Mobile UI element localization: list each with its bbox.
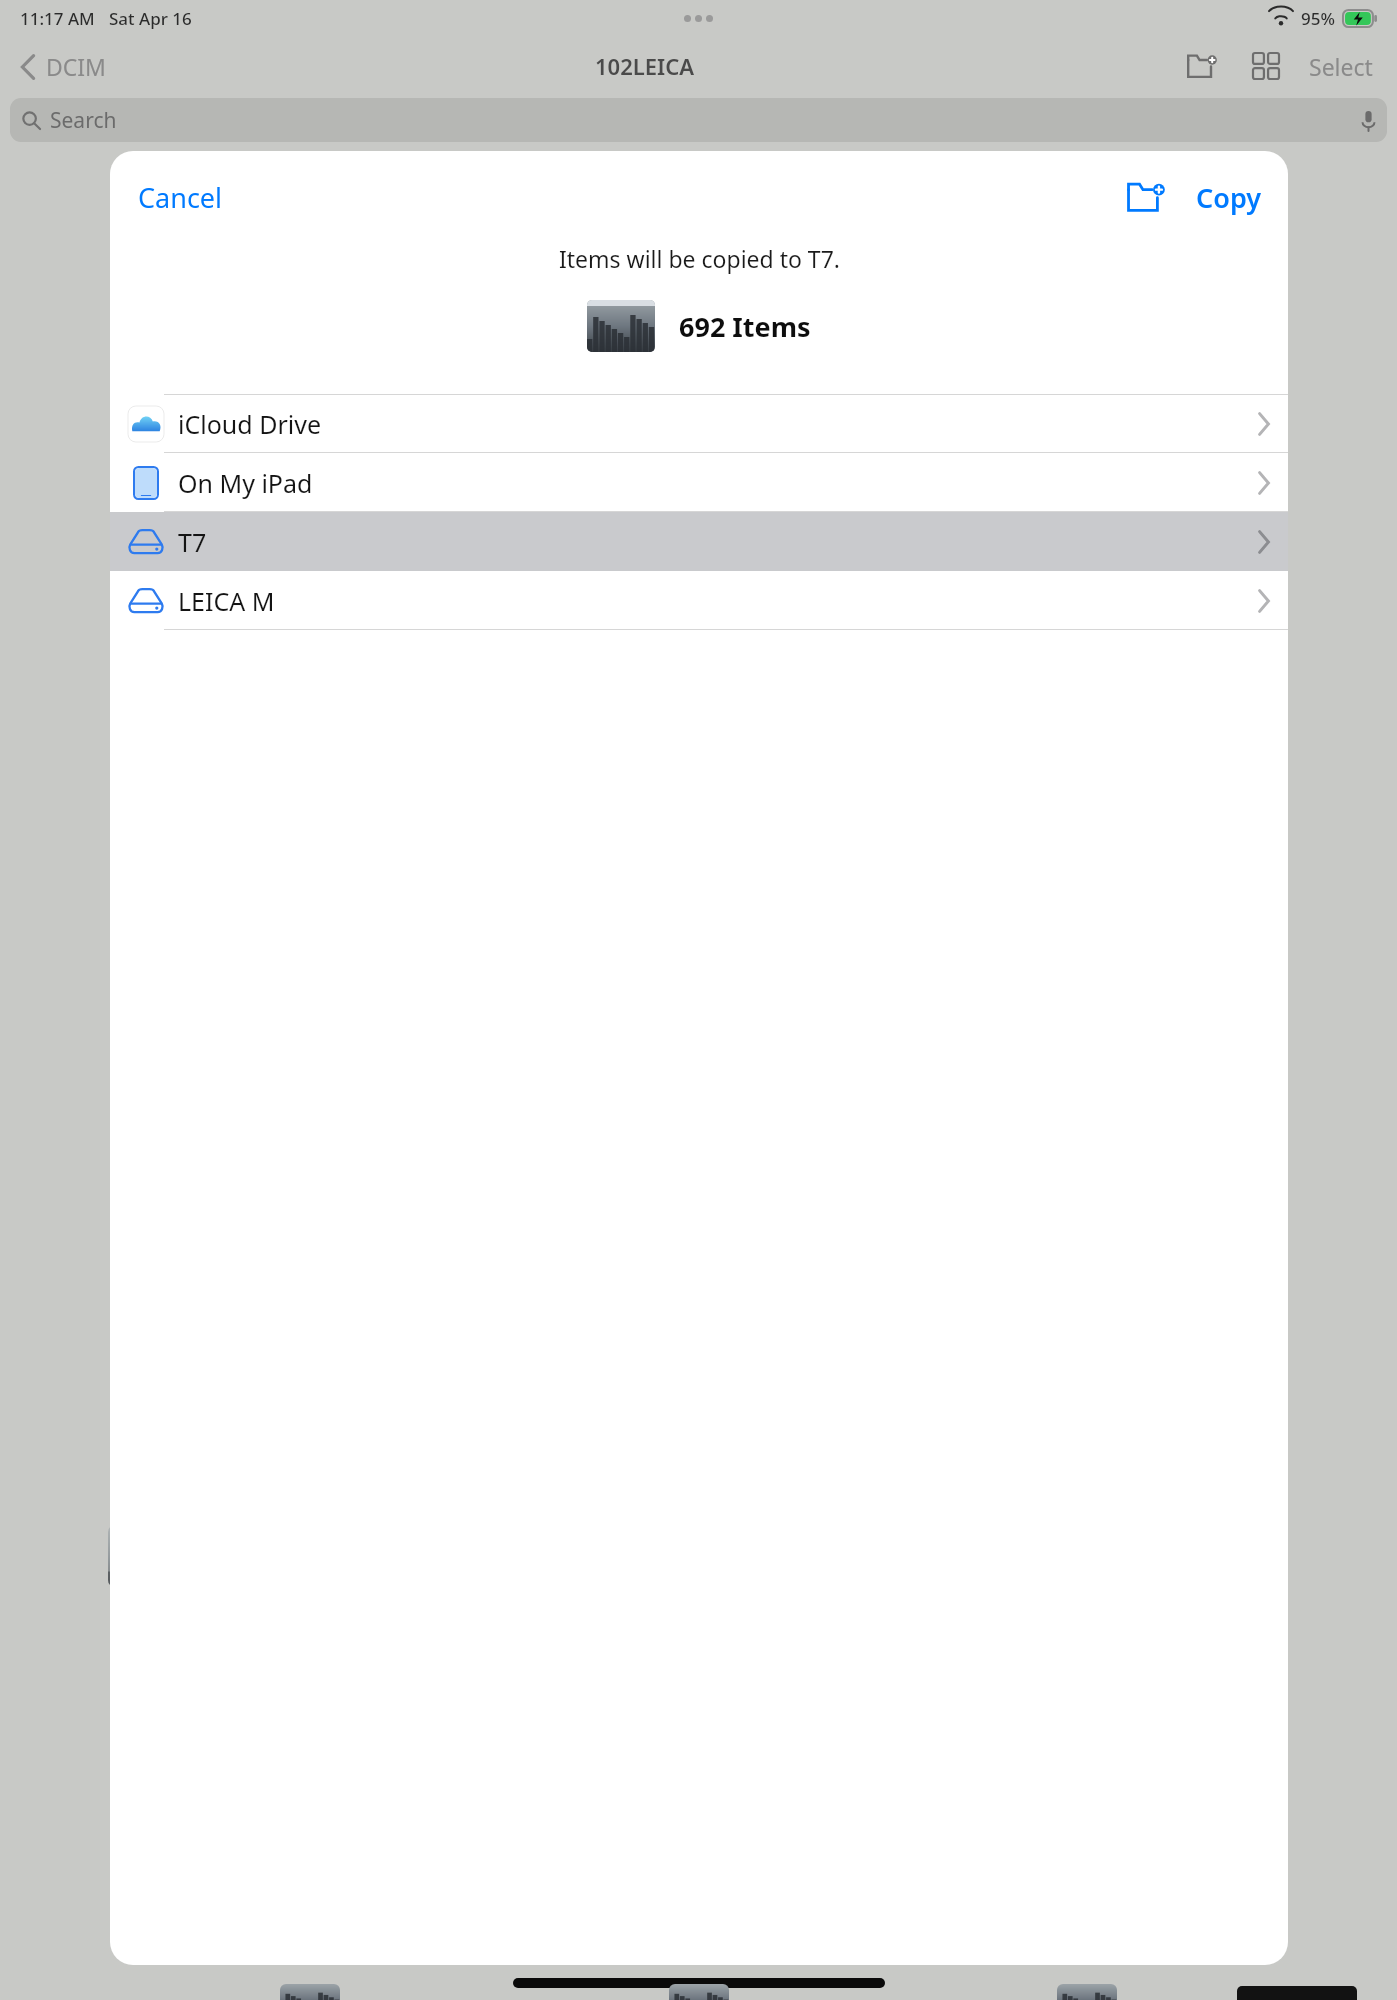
button[interactable]: LEICA M [110,571,1288,630]
button[interactable]: New Folder [1116,167,1176,227]
staticText: 692 Items [679,308,811,345]
button[interactable]: Copy [1184,171,1274,224]
button[interactable]: New Folder [1179,43,1225,89]
staticText: iCloud Drive [178,407,321,441]
button[interactable]: Cancel [126,171,235,224]
button[interactable]: On My iPad [110,453,1288,512]
staticText: 95% [1301,7,1335,30]
staticText: DCIM [46,51,106,82]
button[interactable]: T7 [110,512,1288,571]
staticText: 11:17 AM [20,7,95,30]
staticText: Search [50,106,117,135]
button[interactable]: Select [1303,45,1379,88]
button[interactable]: Search [10,98,1387,142]
staticText: LEICA M [178,584,275,618]
staticText: Select [1309,51,1373,82]
staticText: 102LEICA [595,51,695,81]
button[interactable]: iCloud Drive [110,394,1288,453]
staticText: On My iPad [178,466,313,500]
staticText: Copy [1196,179,1262,216]
button[interactable]: DCIM [14,45,112,88]
button[interactable]: Grid view [1243,43,1289,89]
staticText: Items will be copied to T7. [559,243,840,274]
staticText: T7 [178,525,207,559]
staticText: Sat Apr 16 [109,7,192,30]
staticText: Cancel [138,179,223,216]
